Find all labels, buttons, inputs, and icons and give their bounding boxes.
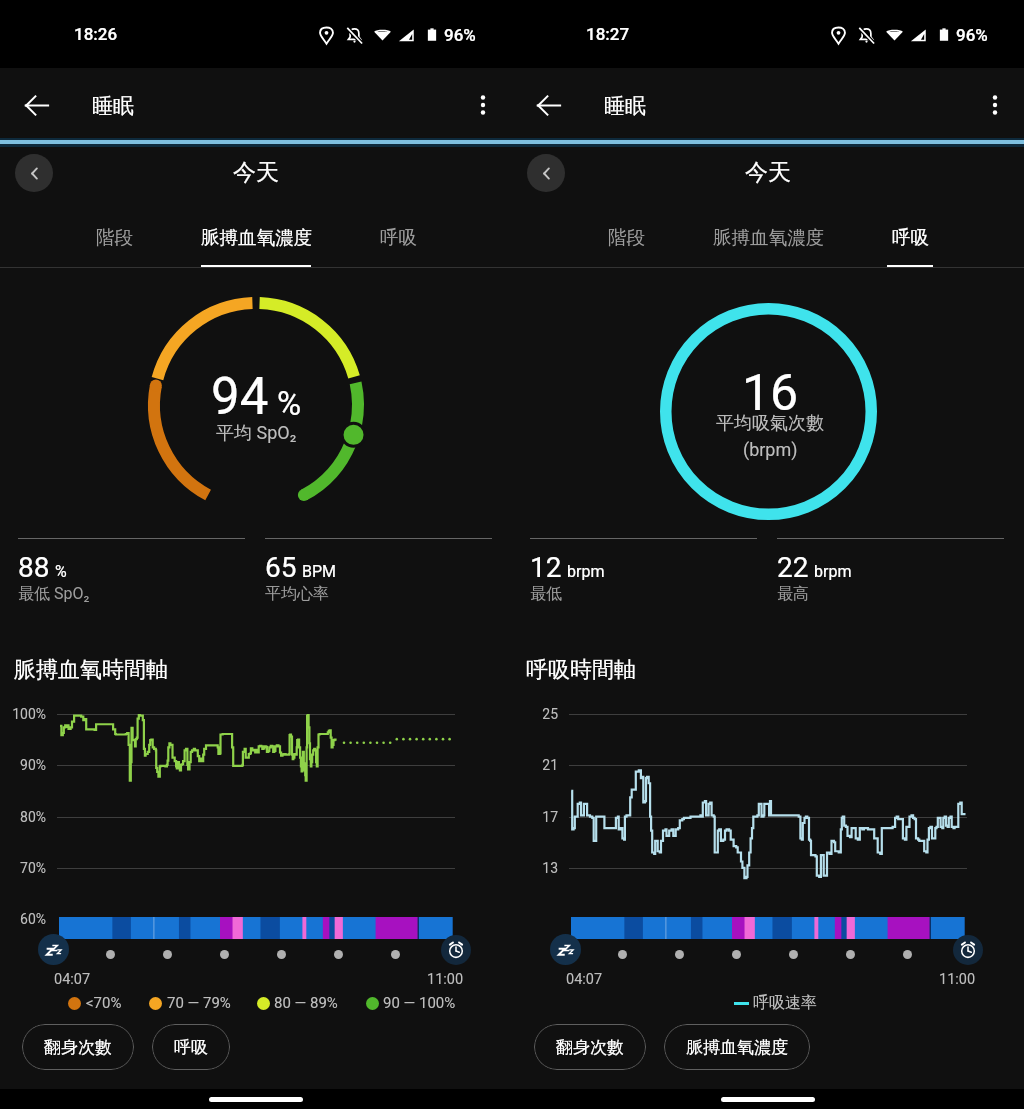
staticText: 最低 — [530, 584, 562, 604]
staticText: 11:00 — [939, 971, 976, 988]
staticText: 70 — 79% — [167, 994, 231, 1012]
staticText: % — [277, 384, 302, 423]
staticText: 18:27 — [586, 24, 630, 44]
staticText: 17 — [542, 809, 558, 825]
button[interactable]: Back — [14, 83, 58, 127]
button[interactable]: More options — [973, 83, 1017, 127]
button[interactable]: Alarm — [953, 935, 983, 965]
button[interactable]: Back — [526, 83, 570, 127]
button[interactable]: 脈搏血氧濃度 — [686, 208, 850, 268]
staticText: 70% — [20, 860, 46, 876]
button[interactable]: 脈搏血氧濃度 — [174, 208, 338, 268]
staticText: 呼吸速率 — [753, 993, 817, 1013]
button[interactable]: Alarm — [441, 935, 471, 965]
staticText: 04:07 — [566, 971, 603, 988]
staticText: 今天 — [233, 158, 279, 187]
staticText: 平均心率 — [265, 584, 329, 604]
button[interactable]: 呼吸 — [863, 208, 957, 268]
staticText: (brpm) — [743, 439, 798, 460]
button[interactable]: Sleep start — [550, 934, 581, 965]
staticText: % — [55, 562, 67, 581]
staticText: 11:00 — [427, 971, 464, 988]
staticText: 最高 — [777, 584, 809, 604]
staticText: 65 — [265, 551, 297, 584]
button[interactable]: Home — [721, 1097, 815, 1102]
staticText: 今天 — [745, 158, 791, 187]
staticText: 最低 SpO₂ — [18, 584, 90, 604]
staticText: 呼吸 — [380, 226, 417, 249]
button[interactable]: 70 — 79% — [149, 993, 231, 1013]
button[interactable]: More options — [461, 83, 505, 127]
staticText: 04:07 — [54, 971, 91, 988]
button[interactable]: 呼吸 — [351, 208, 445, 268]
staticText: 12 — [530, 551, 562, 584]
staticText: 18:26 — [74, 24, 118, 44]
staticText: 22 — [777, 551, 809, 584]
button[interactable]: <70% — [68, 993, 122, 1013]
staticText: 脈搏血氧濃度 — [686, 1037, 788, 1058]
button[interactable]: Sleep start — [38, 934, 69, 965]
staticText: 100% — [12, 706, 46, 722]
staticText: 脈搏血氧濃度 — [713, 226, 824, 249]
staticText: 94 — [211, 367, 269, 427]
button[interactable]: 80 — 89% — [257, 993, 338, 1013]
staticText: 90 — 100% — [383, 994, 456, 1012]
staticText: 80% — [20, 809, 46, 825]
staticText: 睡眠 — [92, 93, 134, 119]
button[interactable]: 呼吸 — [152, 1024, 230, 1070]
staticText: 脈搏血氧濃度 — [201, 226, 312, 249]
staticText: <70% — [86, 994, 122, 1012]
button[interactable]: 翻身次數 — [22, 1024, 134, 1070]
staticText: 平均 SpO₂ — [216, 422, 297, 445]
staticText: 翻身次數 — [44, 1037, 112, 1058]
button[interactable]: 階段 — [67, 208, 161, 268]
staticText: 13 — [542, 860, 558, 876]
staticText: 25 — [542, 706, 558, 722]
button[interactable]: 90 — 100% — [366, 993, 456, 1013]
staticText: 階段 — [96, 226, 133, 249]
button[interactable]: Home — [209, 1097, 303, 1102]
staticText: 90% — [20, 757, 46, 773]
staticText: 階段 — [608, 226, 645, 249]
button[interactable]: Previous day — [15, 154, 53, 192]
staticText: 呼吸 — [892, 226, 929, 249]
staticText: 呼吸 — [174, 1037, 208, 1058]
button[interactable]: 呼吸速率 — [734, 993, 817, 1013]
button[interactable]: 翻身次數 — [534, 1024, 646, 1070]
staticText: 16 — [742, 364, 799, 423]
button[interactable]: Previous day — [527, 154, 565, 192]
staticText: brpm — [567, 562, 605, 581]
staticText: 翻身次數 — [556, 1037, 624, 1058]
staticText: 脈搏血氧時間軸 — [14, 656, 168, 684]
staticText: brpm — [814, 562, 852, 581]
staticText: 96% — [956, 25, 988, 45]
staticText: 80 — 89% — [274, 994, 338, 1012]
staticText: 21 — [542, 757, 558, 773]
staticText: 96% — [444, 25, 476, 45]
staticText: 睡眠 — [604, 93, 646, 119]
staticText: 88 — [18, 551, 50, 584]
button[interactable]: 脈搏血氧濃度 — [664, 1024, 810, 1070]
staticText: 平均吸氣次數 — [716, 412, 824, 435]
staticText: 60% — [20, 911, 46, 927]
staticText: BPM — [302, 562, 337, 581]
staticText: 呼吸時間軸 — [526, 656, 636, 684]
button[interactable]: 階段 — [579, 208, 673, 268]
